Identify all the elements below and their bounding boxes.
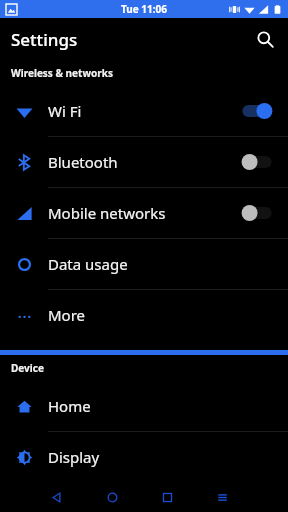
staticText: Data usage	[48, 254, 288, 274]
button[interactable]: Home	[0, 381, 288, 431]
staticText: Device	[11, 361, 44, 375]
button[interactable]: Mobile networks	[0, 188, 288, 238]
button[interactable]: Data usage	[0, 239, 288, 289]
button[interactable]: Recents	[147, 482, 187, 512]
staticText: Bluetooth	[48, 152, 240, 172]
staticText: Mobile networks	[48, 203, 240, 223]
staticText: Home	[48, 396, 288, 416]
button[interactable]: Back	[36, 482, 76, 512]
staticText: More	[48, 305, 288, 325]
button[interactable]: Home	[92, 482, 132, 512]
staticText: Wireless & networks	[11, 66, 113, 80]
button[interactable]: Display	[0, 432, 288, 482]
staticText: Display	[48, 447, 288, 467]
button[interactable]: More	[0, 290, 288, 340]
staticText: Wi Fi	[48, 101, 240, 121]
button[interactable]: Wi Fi	[0, 86, 288, 136]
staticText: Tue 11:06	[121, 2, 168, 16]
button[interactable]: Menu	[202, 482, 242, 512]
button[interactable]: Bluetooth	[0, 137, 288, 187]
button[interactable]: Search	[248, 22, 282, 56]
staticText: Settings	[11, 28, 78, 51]
